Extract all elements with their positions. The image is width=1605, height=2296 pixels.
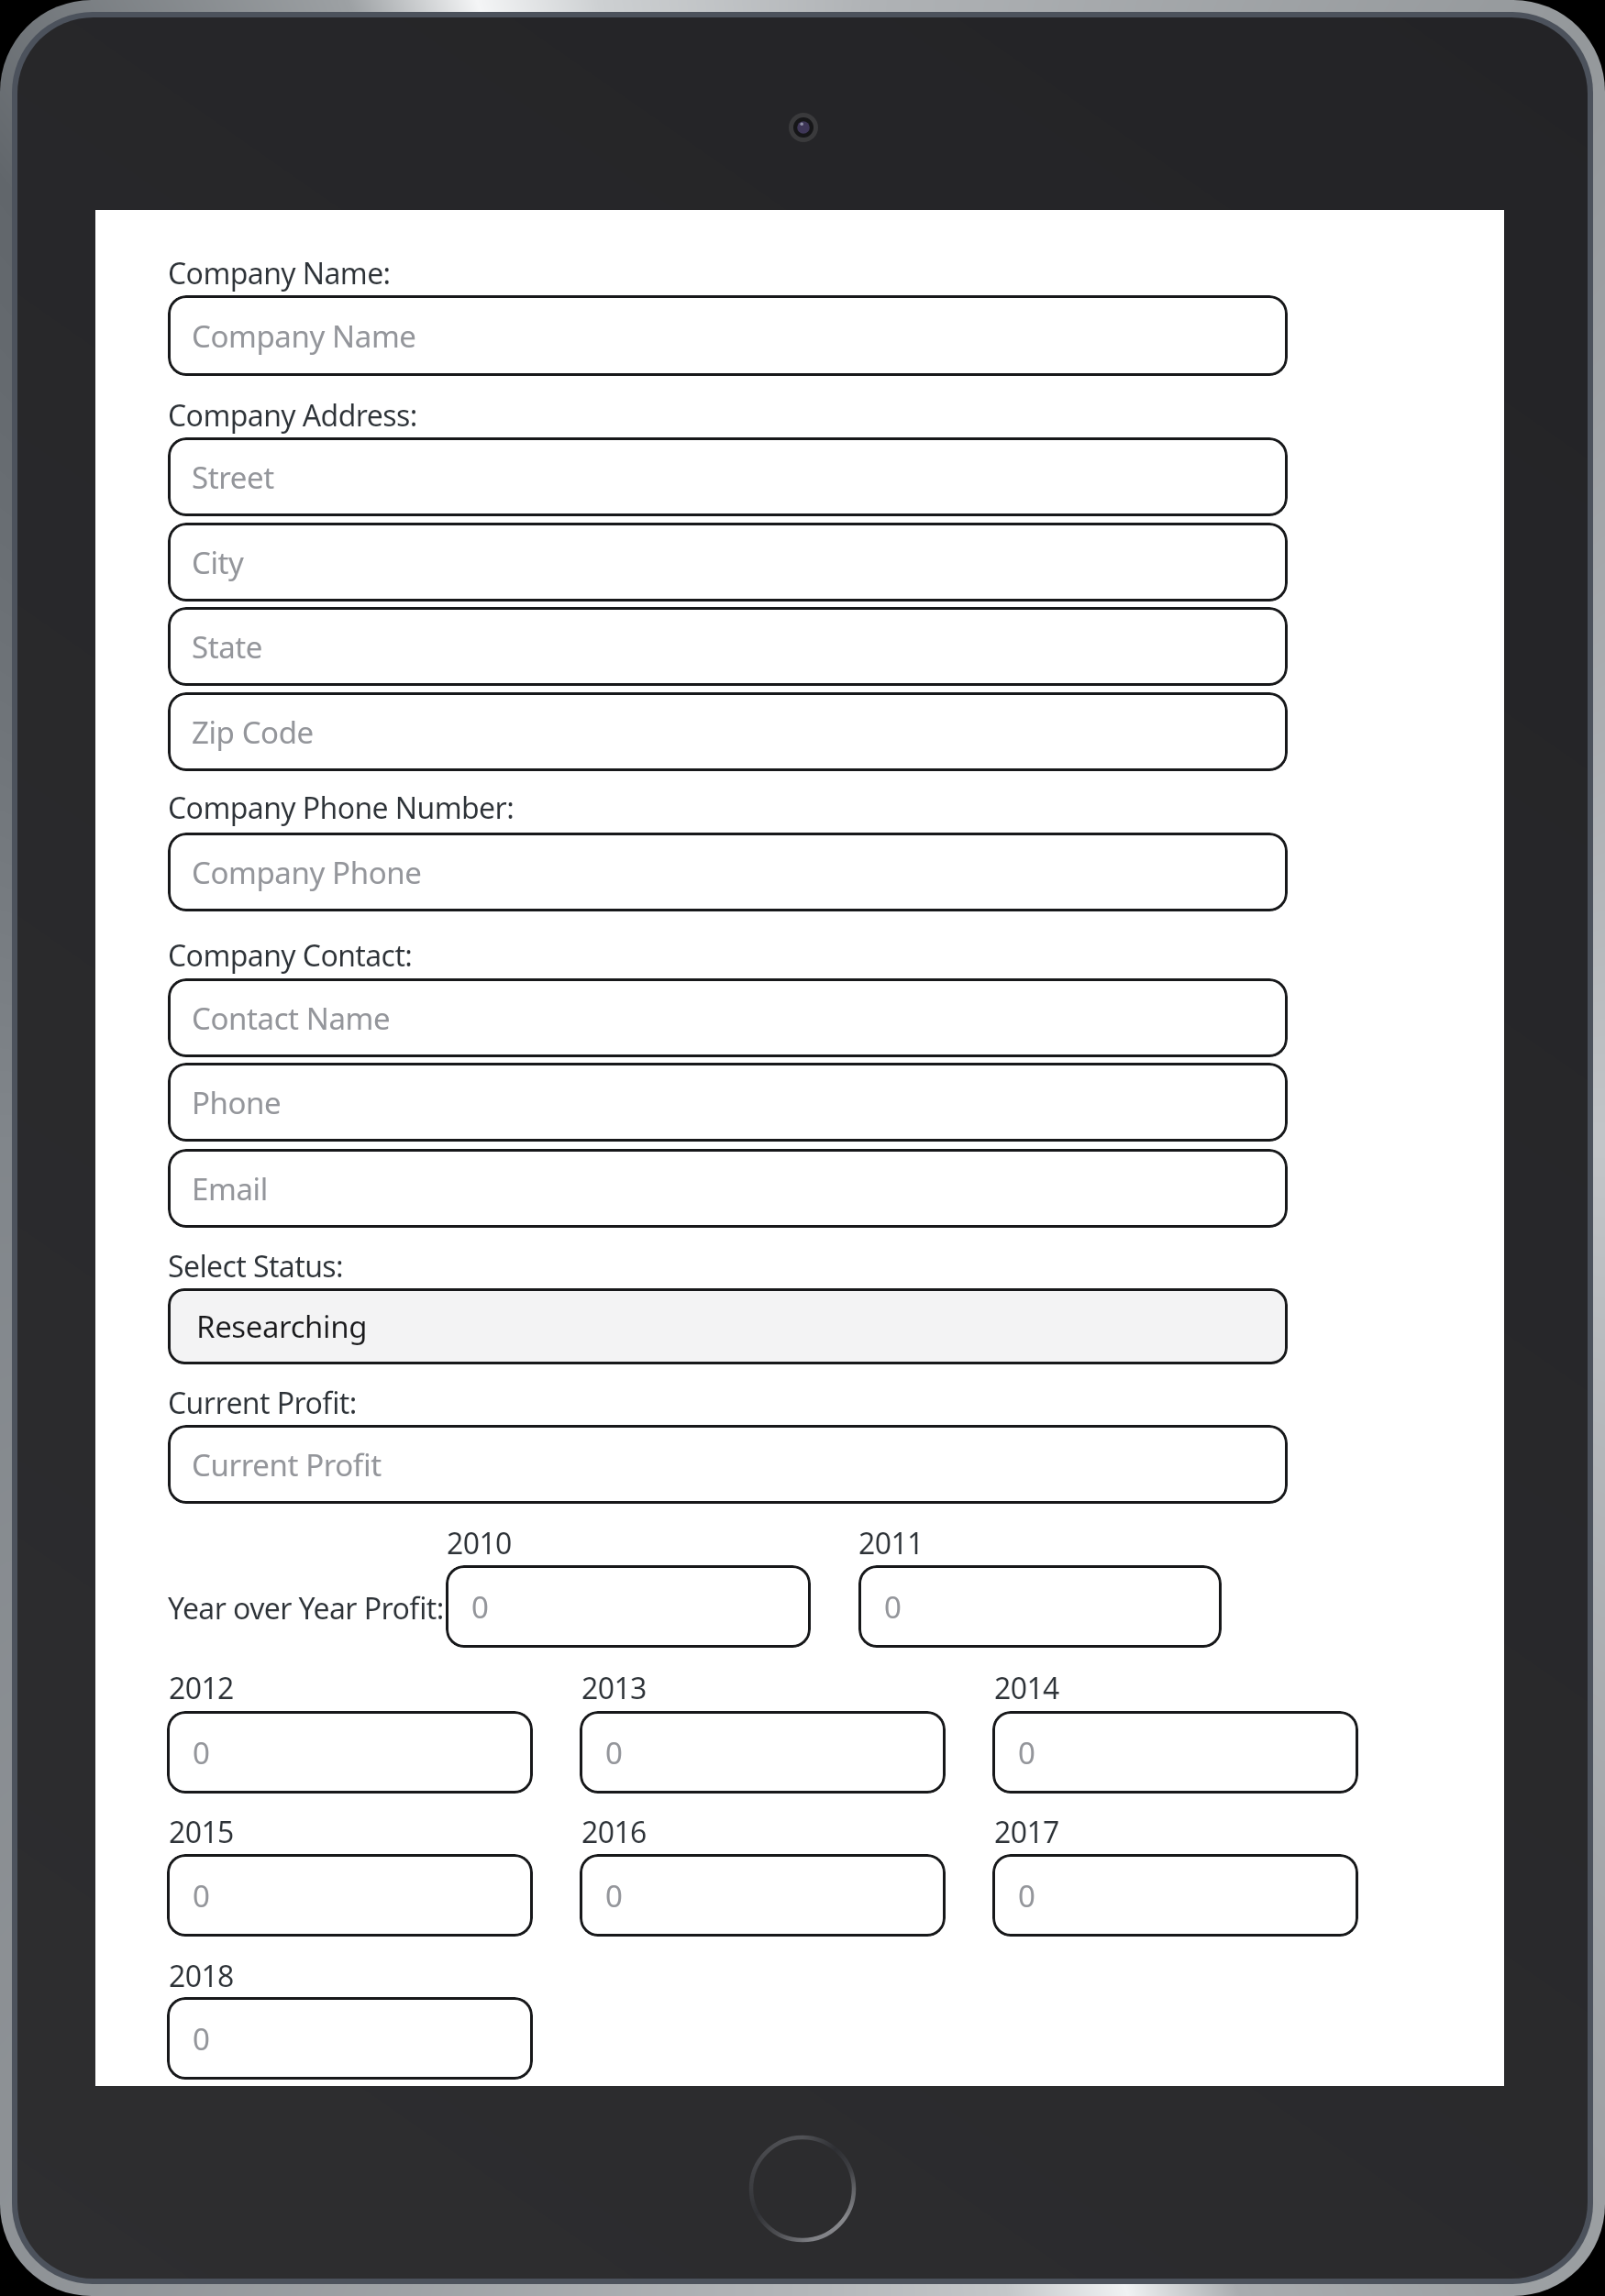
staticText: Zip Code <box>192 712 314 753</box>
staticText: 2014 <box>994 1668 1059 1708</box>
button[interactable]: Researching <box>168 1288 1288 1364</box>
staticText: 0 <box>884 1586 902 1628</box>
staticText: 0 <box>605 1875 623 1916</box>
staticText: 0 <box>1018 1732 1035 1773</box>
staticText: Researching <box>196 1306 368 1347</box>
staticText: 0 <box>605 1732 623 1773</box>
staticText: Year over Year Profit: <box>168 1588 444 1628</box>
button[interactable]: 0 <box>992 1711 1358 1794</box>
staticText: Street <box>192 457 274 498</box>
button[interactable]: State <box>168 607 1288 686</box>
staticText: 2017 <box>994 1812 1059 1852</box>
staticText: 0 <box>193 1875 210 1916</box>
staticText: 2015 <box>169 1812 234 1852</box>
button[interactable]: Contact Name <box>168 978 1288 1057</box>
staticText: 0 <box>1018 1875 1035 1916</box>
staticText: Company Name <box>192 315 416 357</box>
staticText: Company Contact: <box>168 935 413 976</box>
staticText: 2010 <box>447 1523 512 1563</box>
button[interactable]: 0 <box>580 1854 946 1937</box>
staticText: Contact Name <box>192 998 391 1039</box>
staticText: Email <box>192 1168 268 1209</box>
staticText: 0 <box>193 2018 210 2059</box>
button[interactable]: Company Name <box>168 295 1288 376</box>
staticText: State <box>192 626 263 668</box>
button[interactable]: 0 <box>446 1565 811 1648</box>
button[interactable]: 0 <box>167 1997 533 2080</box>
button[interactable]: Zip Code <box>168 692 1288 771</box>
staticText: Company Phone <box>192 852 422 893</box>
button[interactable]: Street <box>168 437 1288 516</box>
staticText: Current Profit: <box>168 1383 357 1423</box>
staticText: Select Status: <box>168 1246 344 1286</box>
staticText: Phone <box>192 1082 282 1123</box>
staticText: 0 <box>471 1586 489 1628</box>
staticText: 2011 <box>858 1523 924 1563</box>
staticText: Company Name: <box>168 253 391 293</box>
staticText: 2018 <box>169 1956 234 1996</box>
staticText: 2013 <box>581 1668 647 1708</box>
staticText: Company Phone Number: <box>168 788 515 828</box>
staticText: Company Address: <box>168 395 417 436</box>
button[interactable]: 0 <box>167 1711 533 1794</box>
button[interactable]: 0 <box>167 1854 533 1937</box>
staticText: City <box>192 542 244 583</box>
button[interactable]: Current Profit <box>168 1425 1288 1504</box>
staticText: 0 <box>193 1732 210 1773</box>
button[interactable]: 0 <box>992 1854 1358 1937</box>
staticText: 2012 <box>169 1668 234 1708</box>
button[interactable]: City <box>168 523 1288 602</box>
button[interactable]: Company Phone <box>168 833 1288 911</box>
staticText: 2016 <box>581 1812 647 1852</box>
button[interactable]: Email <box>168 1149 1288 1228</box>
staticText: Current Profit <box>192 1444 382 1485</box>
button[interactable]: Phone <box>168 1063 1288 1142</box>
button[interactable]: 0 <box>858 1565 1222 1648</box>
button[interactable]: 0 <box>580 1711 946 1794</box>
